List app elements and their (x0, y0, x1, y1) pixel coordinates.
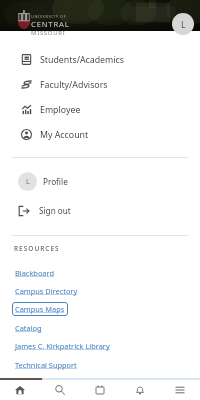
staticText: RESOURCES (14, 244, 60, 253)
staticText: Campus Directory (15, 286, 78, 296)
staticText: Students/Academics (40, 54, 124, 66)
staticText: Technical Support (15, 360, 77, 370)
button[interactable]: Menu (160, 380, 200, 400)
staticText: Employee (40, 104, 81, 116)
button[interactable]: Technical Support (12, 358, 80, 372)
button[interactable]: Campus Directory (12, 284, 81, 298)
staticText: Campus Maps (15, 304, 65, 314)
staticText: Catalog (15, 323, 42, 333)
button[interactable]: Catalog (12, 321, 45, 335)
button[interactable]: Notifications (120, 380, 160, 400)
staticText: Profile (43, 176, 68, 187)
button[interactable]: Blackboard (12, 266, 57, 280)
staticText: CENTRAL (31, 19, 70, 29)
button[interactable]: Campus Maps (12, 302, 68, 316)
button[interactable]: Employee (0, 97, 200, 122)
staticText: My Account (40, 129, 89, 141)
button[interactable]: Calendar (80, 380, 120, 400)
button[interactable]: Sign out (0, 199, 200, 222)
staticText: MISSOURI (31, 29, 66, 37)
button[interactable]: My Account (0, 122, 200, 147)
button[interactable]: Home (0, 380, 40, 400)
staticText: L (181, 18, 186, 30)
button[interactable]: Students/Academics (0, 47, 200, 72)
button[interactable]: Account (172, 13, 194, 35)
button[interactable]: James C. Kirkpatrick Library (12, 339, 113, 353)
staticText: L (26, 177, 30, 187)
staticText: Sign out (39, 205, 71, 216)
button[interactable]: Search (40, 380, 80, 400)
staticText: Faculty/Advisors (40, 79, 108, 91)
staticText: Blackboard (15, 268, 54, 278)
staticText: UNIVERSITY OF (31, 14, 67, 19)
staticText: James C. Kirkpatrick Library (15, 341, 110, 351)
button[interactable]: L (0, 170, 200, 193)
button[interactable]: Faculty/Advisors (0, 72, 200, 97)
